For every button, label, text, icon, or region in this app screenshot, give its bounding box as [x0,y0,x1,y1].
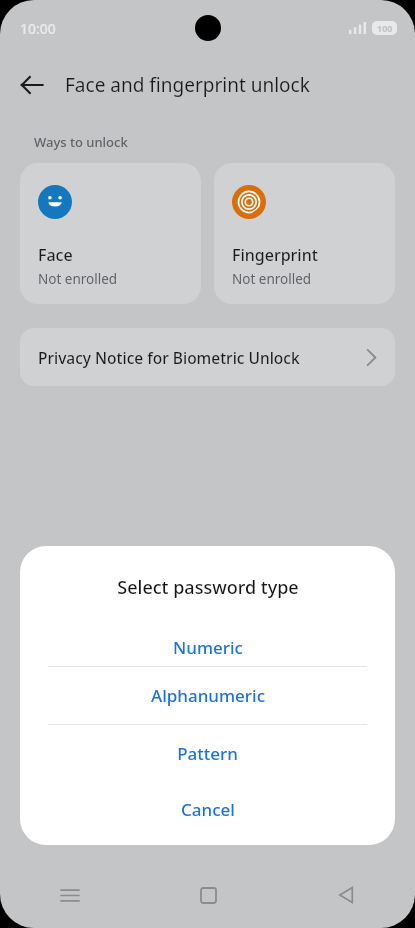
staticText: 100 [377,22,393,34]
staticText: Privacy Notice for Biometric Unlock [38,347,366,368]
button[interactable]: Cancel [20,781,395,837]
button[interactable]: Pattern [20,725,395,781]
button[interactable]: Fingerprint [214,163,395,304]
button[interactable]: Alphanumeric [20,667,395,724]
staticText: Not enrolled [232,270,312,288]
button[interactable]: Face [20,163,201,304]
button[interactable]: Home [139,862,277,928]
staticText: Fingerprint [232,244,318,266]
staticText: Ways to unlock [34,133,128,151]
staticText: Alphanumeric [151,684,265,707]
button[interactable]: Numeric [20,628,395,666]
button[interactable]: Back [8,61,56,109]
button[interactable]: Recent apps [0,862,139,928]
button[interactable]: Back [277,862,415,928]
staticText: Pattern [177,742,238,765]
staticText: Select password type [117,575,299,600]
staticText: Cancel [181,798,235,821]
button[interactable]: Privacy Notice for Biometric Unlock [20,328,395,386]
staticText: Numeric [173,636,243,659]
staticText: Not enrolled [38,270,118,288]
staticText: Face [38,244,73,266]
staticText: 10:00 [20,19,56,38]
staticText: Face and fingerprint unlock [65,72,310,98]
